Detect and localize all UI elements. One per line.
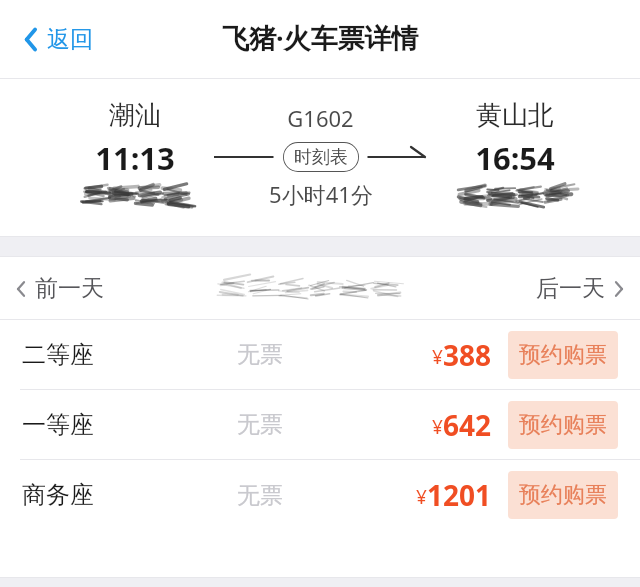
- staticText: 16:54: [475, 137, 555, 179]
- staticText: ¥: [432, 414, 443, 440]
- staticText: 5小时41分: [269, 179, 373, 209]
- staticText: 商务座: [22, 480, 94, 510]
- button[interactable]: Back: [18, 17, 99, 62]
- staticText: 黄山北: [476, 99, 554, 132]
- button[interactable]: 二等座: [0, 320, 640, 389]
- button[interactable]: 时刻表: [283, 142, 359, 172]
- staticText: 一等座: [22, 410, 94, 440]
- staticText: 后一天: [536, 274, 605, 303]
- staticText: 飞猪·火车票详情: [222, 19, 419, 56]
- staticText: G1602: [287, 103, 354, 133]
- staticText: 前一天: [35, 274, 104, 303]
- staticText: 潮汕: [109, 99, 161, 132]
- button[interactable]: 一等座: [0, 390, 640, 459]
- staticText: 二等座: [22, 340, 94, 370]
- staticText: 返回: [47, 25, 93, 54]
- staticText: 无票: [237, 481, 283, 510]
- staticText: 无票: [237, 410, 283, 439]
- staticText: ¥: [416, 484, 427, 510]
- button[interactable]: 预约购票: [508, 331, 618, 379]
- staticText: 无票: [237, 340, 283, 369]
- staticText: ¥: [432, 344, 443, 370]
- staticText: 预约购票: [519, 481, 607, 509]
- staticText: 1201: [427, 476, 492, 514]
- button[interactable]: 前一天: [8, 266, 112, 311]
- staticText: 时刻表: [294, 146, 348, 168]
- staticText: 388: [443, 336, 492, 374]
- button[interactable]: 预约购票: [508, 471, 618, 519]
- staticText: 预约购票: [519, 341, 607, 369]
- other: Back: [24, 27, 39, 52]
- staticText: 11:13: [95, 137, 175, 179]
- button[interactable]: 预约购票: [508, 401, 618, 449]
- staticText: 预约购票: [519, 411, 607, 439]
- staticText: 642: [443, 406, 492, 444]
- button[interactable]: 后一天: [528, 266, 632, 311]
- button[interactable]: 商务座: [0, 460, 640, 530]
